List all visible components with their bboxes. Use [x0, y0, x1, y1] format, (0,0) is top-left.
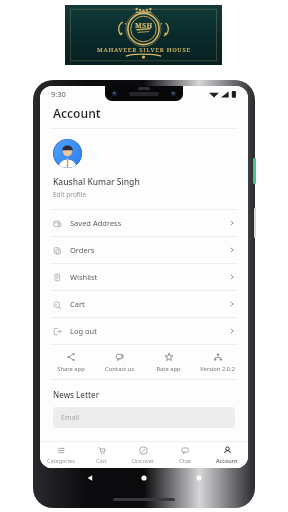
staticText: Rate app [156, 365, 181, 373]
button[interactable]: Email [53, 407, 235, 428]
staticText: Contact us [105, 365, 134, 373]
staticText: Saved Address [70, 218, 122, 228]
staticText: Orders [70, 245, 95, 255]
staticText: Log out [70, 326, 97, 336]
button[interactable]: Rate app [144, 345, 193, 379]
staticText: Share app [57, 365, 85, 373]
staticText: MSH [135, 21, 153, 31]
button[interactable]: Wishlist [40, 264, 248, 290]
staticText: Cart [96, 457, 107, 464]
staticText: MAHAVEER SILVER HOUSE [97, 46, 191, 54]
button[interactable]: Edit profile [53, 190, 87, 199]
staticText: Chat [179, 457, 191, 464]
staticText: 9:30 [51, 89, 66, 99]
button[interactable]: Version 2.0.2 [193, 345, 242, 379]
staticText: Wishlist [70, 272, 98, 282]
staticText: Email [61, 413, 79, 423]
button[interactable]: Chat [164, 442, 206, 468]
staticText: Cart [70, 299, 85, 309]
staticText: News Letter [53, 389, 100, 400]
staticText: Account [216, 457, 238, 464]
button[interactable]: Log out [40, 318, 248, 344]
button[interactable]: Profile photo [53, 139, 82, 168]
staticText: Account [53, 105, 101, 121]
button[interactable]: Discover [122, 442, 164, 468]
button[interactable]: Saved Address [40, 210, 248, 236]
button[interactable]: Account [206, 442, 248, 468]
button[interactable]: Contact us [95, 345, 144, 379]
staticText: Discover [132, 457, 155, 464]
staticText: Version 2.0.2 [200, 365, 235, 373]
staticText: Kaushal Kumar Singh [53, 176, 140, 188]
button[interactable]: Cart [81, 442, 122, 468]
button[interactable]: Cart [40, 291, 248, 317]
button[interactable]: Share app [46, 345, 95, 379]
button[interactable]: Orders [40, 237, 248, 263]
button[interactable]: Categories [40, 442, 81, 468]
staticText: Categories [47, 457, 75, 464]
